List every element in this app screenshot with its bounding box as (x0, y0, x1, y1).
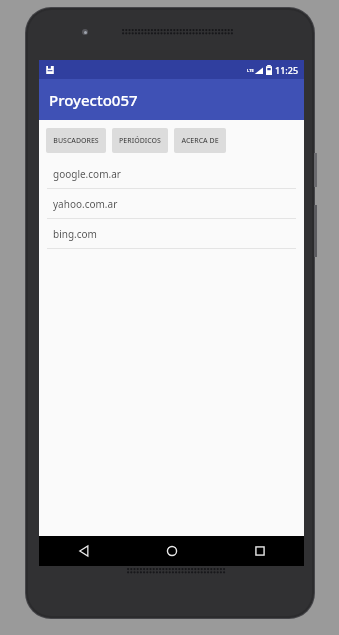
button[interactable]: BUSCADORES (46, 128, 106, 153)
button[interactable]: PERIÓDICOS (112, 128, 168, 153)
button[interactable]: Back (39, 536, 128, 566)
button[interactable]: google.com.ar (39, 159, 304, 189)
staticText: LTE (247, 68, 254, 73)
staticText: yahoo.com.ar (53, 197, 118, 211)
staticText: Proyecto057 (49, 90, 138, 110)
staticText: bing.com (53, 227, 97, 241)
button[interactable]: yahoo.com.ar (39, 189, 304, 219)
button[interactable]: bing.com (39, 219, 304, 249)
staticText: ACERCA DE (181, 136, 219, 146)
staticText: PERIÓDICOS (119, 136, 161, 146)
button[interactable]: ACERCA DE (174, 128, 226, 153)
staticText: google.com.ar (53, 167, 121, 181)
staticText: 11:25 (275, 64, 299, 76)
button[interactable]: Recent apps (216, 536, 304, 566)
staticText: BUSCADORES (53, 136, 99, 146)
button[interactable]: Home (128, 536, 216, 566)
